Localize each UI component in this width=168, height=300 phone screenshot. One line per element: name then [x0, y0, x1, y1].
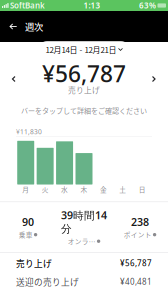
staticText: 水 [61, 184, 68, 194]
staticText: 乗車 [19, 230, 33, 240]
staticText: 金 [100, 184, 107, 194]
staticText: SoftBank [10, 0, 45, 11]
staticText: 39時間14分 [61, 208, 107, 235]
button[interactable]: Back [5, 18, 21, 35]
staticText: 90 [22, 215, 34, 229]
staticText: 1:13 [83, 0, 100, 11]
staticText: オンラ… [68, 236, 96, 246]
button[interactable]: Previous week [6, 70, 22, 88]
staticText: 月 [22, 184, 29, 194]
staticText: 売り上げ [68, 84, 100, 96]
button[interactable]: 90 [0, 215, 56, 239]
staticText: 売り上げ [16, 257, 52, 269]
staticText: ¥56,787 [42, 58, 126, 88]
staticText: 送迎の売り上げ [16, 275, 79, 288]
button[interactable]: 39時間14分 [56, 208, 112, 246]
staticText: ¥11,830 [16, 127, 42, 136]
staticText: ¥40,481 [120, 276, 152, 287]
staticText: バーをタップして詳細をご確認ください [21, 105, 147, 116]
staticText: ポイント [124, 230, 152, 240]
staticText: ¥56,787 [120, 258, 152, 268]
staticText: 12月14日 - 12月21日 [45, 44, 116, 55]
staticText: 木 [80, 184, 87, 194]
staticText: 火 [42, 184, 49, 194]
staticText: 238 [131, 215, 149, 229]
staticText: 土 [119, 184, 126, 194]
button[interactable]: 12月14日 - 12月21日 [38, 41, 129, 58]
button[interactable]: 238 [112, 215, 168, 239]
staticText: 日 [139, 184, 146, 194]
staticText: 週次 [25, 20, 43, 33]
button[interactable]: Next week [146, 70, 162, 88]
staticText: 63% [139, 0, 156, 11]
